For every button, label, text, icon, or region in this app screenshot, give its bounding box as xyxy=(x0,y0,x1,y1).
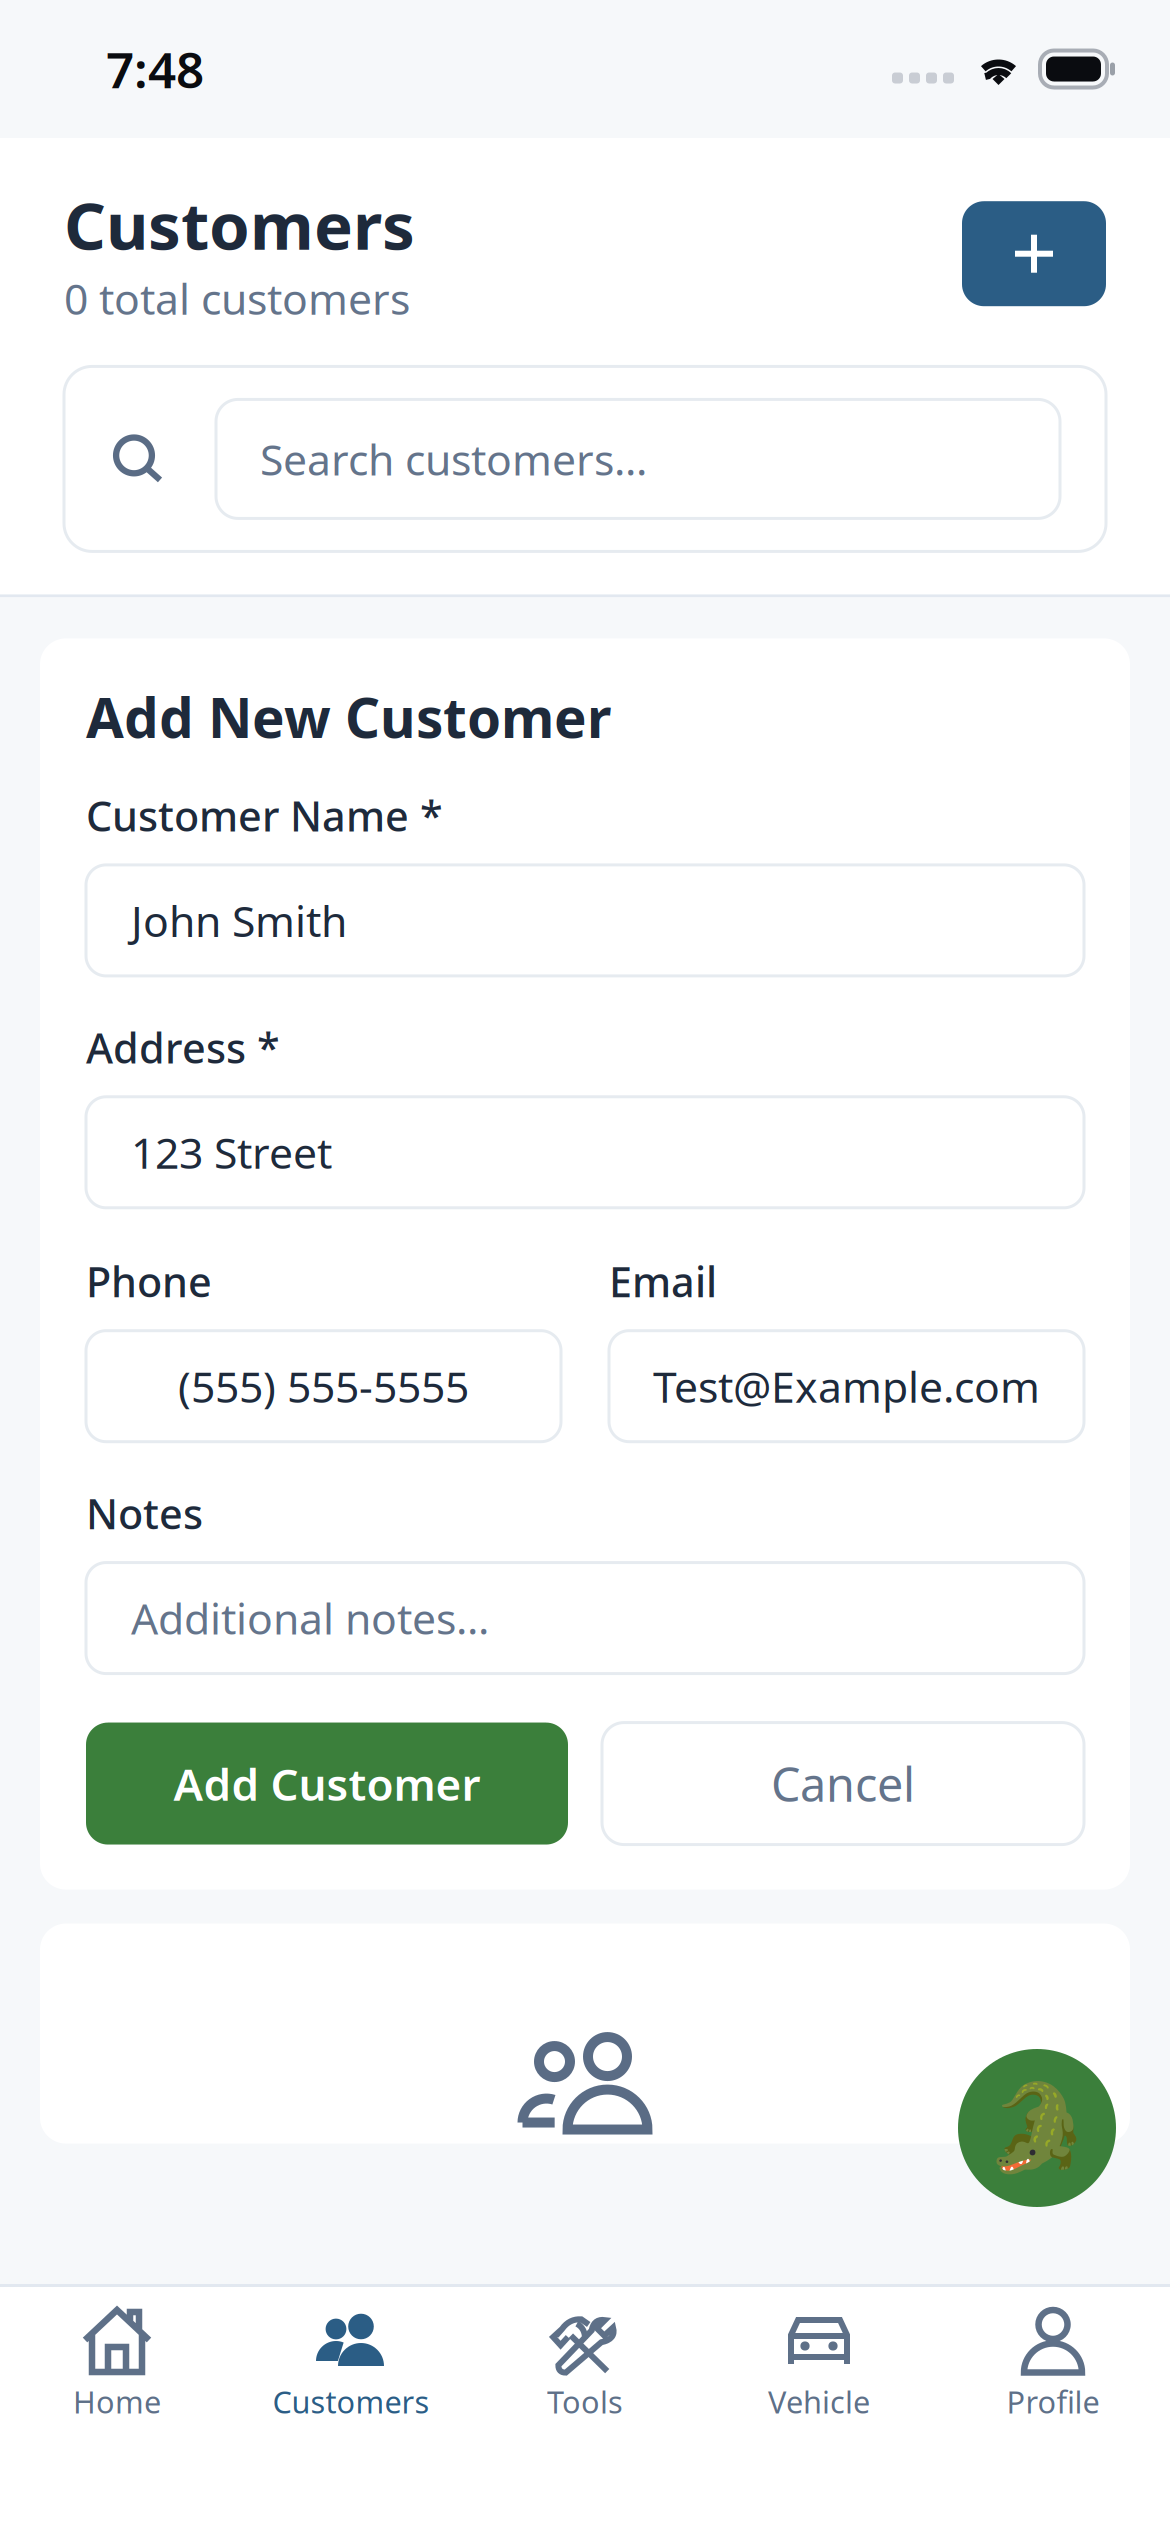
staticText: 0 total customers xyxy=(64,270,410,326)
staticText: Profile xyxy=(1006,2381,1099,2422)
button[interactable]: Home xyxy=(0,2284,234,2444)
staticText: Tools xyxy=(547,2381,623,2422)
staticText: Cancel xyxy=(771,1753,915,1815)
staticText: 🐊 xyxy=(984,2079,1090,2177)
button[interactable]: Tools xyxy=(468,2284,702,2444)
staticText: Search customers... xyxy=(260,431,647,487)
staticText: Add Customer xyxy=(173,1754,480,1813)
staticText: John Smith xyxy=(131,892,347,949)
button[interactable]: Assistant xyxy=(958,2049,1116,2207)
staticText: Additional notes... xyxy=(131,1590,489,1646)
staticText: (555) 555-5555 xyxy=(178,1358,469,1414)
staticText: Phone xyxy=(86,1254,212,1309)
button[interactable]: Search customers... xyxy=(216,399,1060,518)
button[interactable]: Add customer xyxy=(962,201,1106,306)
staticText: Home xyxy=(73,2381,161,2422)
staticText: 7:48 xyxy=(106,36,204,102)
button[interactable]: Add Customer xyxy=(86,1723,568,1845)
staticText: Vehicle xyxy=(768,2381,870,2422)
staticText: Add New Customer xyxy=(86,680,611,753)
button[interactable]: Customers xyxy=(234,2284,468,2444)
staticText: Notes xyxy=(86,1486,203,1541)
staticText: Customers xyxy=(64,181,415,268)
button[interactable]: Vehicle xyxy=(702,2284,936,2444)
button[interactable]: Cancel xyxy=(602,1723,1084,1845)
staticText: Customer Name * xyxy=(86,788,443,843)
staticText: Test@Example.com xyxy=(653,1358,1040,1414)
staticText: Email xyxy=(609,1254,717,1309)
staticText: Customers xyxy=(272,2381,429,2422)
button[interactable]: Profile xyxy=(936,2284,1170,2444)
staticText: Address * xyxy=(86,1020,280,1075)
staticText: 123 Street xyxy=(131,1124,332,1181)
